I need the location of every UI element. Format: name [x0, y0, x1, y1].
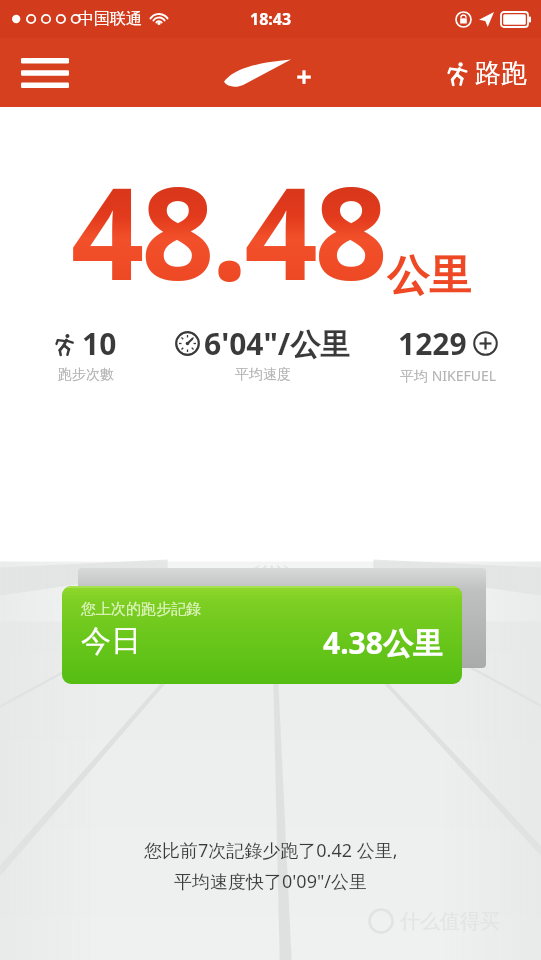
staticText: 18:43	[250, 8, 292, 30]
staticText: 路跑	[475, 57, 527, 90]
staticText: 48.48	[71, 143, 385, 317]
staticText: 6'04"/公里	[204, 323, 351, 364]
staticText: 4.38公里	[323, 622, 443, 663]
staticText: 平均 NIKEFUEL	[400, 366, 497, 385]
button[interactable]: Menu	[14, 49, 76, 97]
button[interactable]: Nike Plus	[217, 49, 325, 97]
staticText: 1229	[398, 323, 467, 364]
button[interactable]: 您上次的跑步記錄	[62, 586, 462, 684]
staticText: 平均速度快了0'09"/公里	[174, 869, 367, 894]
staticText: 您比前7次記錄少跑了0.42 公里,	[144, 838, 398, 863]
button[interactable]: 6'04"/公里	[161, 323, 365, 384]
staticText: 10	[82, 323, 117, 364]
button[interactable]: 10	[10, 323, 161, 384]
staticText: 公里	[387, 250, 471, 303]
staticText: 跑步次數	[58, 366, 114, 384]
staticText: 平均速度	[235, 366, 291, 384]
staticText: 今日	[81, 622, 141, 660]
staticText: 什么值得买	[400, 909, 500, 934]
button[interactable]: 1229	[365, 323, 531, 385]
staticText: 中国联通	[78, 9, 142, 29]
staticText: 您上次的跑步記錄	[81, 600, 201, 619]
button[interactable]: 路跑	[446, 49, 527, 97]
